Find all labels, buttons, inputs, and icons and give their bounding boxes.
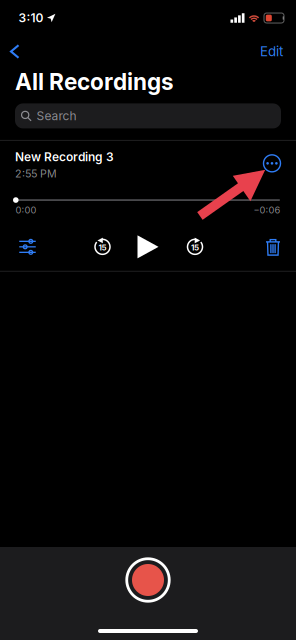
button[interactable]: Skip forward 15 seconds: [178, 231, 212, 263]
staticText: 3:10: [19, 11, 44, 25]
button[interactable]: Edit: [247, 36, 296, 66]
button[interactable]: More options: [259, 150, 285, 176]
staticText: New Recording 3: [15, 150, 114, 164]
button[interactable]: Record: [123, 555, 173, 605]
staticText: Search: [36, 109, 76, 123]
staticText: 15: [98, 243, 106, 252]
button[interactable]: Back: [0, 38, 31, 65]
button[interactable]: Search: [0, 95, 296, 128]
staticText: 15: [191, 243, 199, 252]
button[interactable]: Play: [131, 231, 165, 263]
staticText: 2:55 PM: [15, 167, 57, 180]
button[interactable]: Skip back 15 seconds: [85, 231, 119, 263]
staticText: 0:00: [15, 205, 36, 216]
staticText: All Recordings: [15, 68, 174, 95]
staticText: −0:06: [253, 205, 280, 216]
button[interactable]: Playback settings: [10, 231, 44, 263]
staticText: Edit: [260, 43, 283, 59]
button[interactable]: Delete: [256, 231, 290, 263]
